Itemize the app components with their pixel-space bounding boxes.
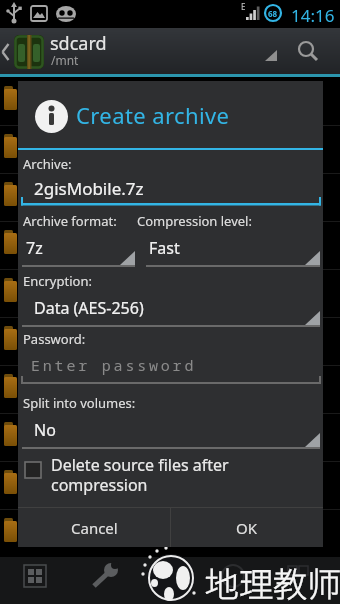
button[interactable] — [21, 349, 321, 385]
button[interactable]: Data (AES-256) — [22, 294, 320, 327]
staticText: Archive format: — [23, 212, 117, 230]
staticText: 地理教师 — [205, 558, 340, 604]
button[interactable]: OK — [171, 508, 323, 547]
staticText: 68 — [268, 8, 278, 19]
staticText: /mnt — [51, 52, 79, 68]
button[interactable]: Cancel — [18, 508, 170, 547]
staticText: Delete source files after — [51, 454, 229, 476]
staticText: compression — [51, 474, 148, 496]
staticText: Enter password — [31, 355, 197, 375]
staticText: No — [34, 419, 56, 441]
staticText: Data (AES-256) — [34, 297, 144, 319]
button[interactable] — [0, 28, 50, 77]
button[interactable] — [290, 28, 330, 74]
button[interactable]: Fast — [146, 234, 320, 267]
staticText: sdcard — [50, 31, 107, 56]
staticText: Archive: — [23, 155, 72, 173]
button[interactable] — [10, 557, 70, 604]
button[interactable] — [80, 557, 140, 604]
staticText: 7z — [26, 237, 43, 259]
button[interactable] — [21, 169, 321, 204]
button[interactable]: Delete source files after — [18, 453, 323, 503]
staticText: 2gisMobile.7z — [34, 177, 144, 200]
staticText: 14:16 — [291, 4, 335, 27]
staticText: Cancel — [71, 518, 118, 538]
staticText: Compression level: — [137, 212, 252, 230]
staticText: Split into volumes: — [23, 394, 136, 412]
staticText: Encryption: — [23, 272, 92, 290]
staticText: E — [241, 1, 246, 12]
staticText: Password: — [23, 330, 86, 348]
staticText: Fast — [149, 237, 180, 259]
staticText: OK — [236, 518, 258, 538]
button[interactable]: No — [22, 416, 320, 449]
staticText: Create archive — [76, 100, 230, 130]
button[interactable]: 7z — [22, 234, 135, 267]
